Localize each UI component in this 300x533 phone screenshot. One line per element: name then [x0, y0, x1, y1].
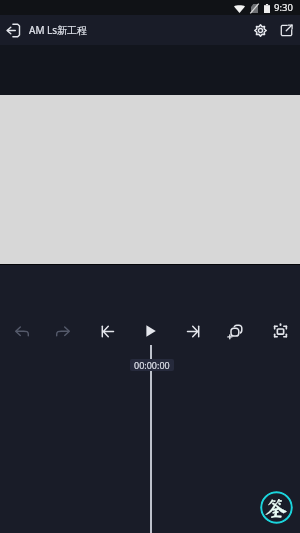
button[interactable]: Fit to screen — [266, 317, 294, 345]
staticText: 00:00:00 — [134, 359, 170, 371]
button[interactable]: Skip to start — [93, 317, 121, 345]
button[interactable]: Settings — [247, 17, 273, 43]
button[interactable]: Skip to end — [179, 317, 207, 345]
button[interactable]: Duplicate — [221, 317, 249, 345]
button[interactable]: App logo — [260, 491, 293, 524]
button[interactable]: Export — [273, 17, 299, 43]
staticText: 9:30 — [274, 1, 293, 14]
button[interactable]: Redo — [49, 317, 77, 345]
staticText: AM Ls新工程 — [29, 23, 88, 37]
staticText: 筌 — [265, 497, 288, 519]
button[interactable]: Undo — [8, 317, 36, 345]
button[interactable]: Back — [2, 19, 24, 41]
button[interactable]: Play — [137, 317, 165, 345]
